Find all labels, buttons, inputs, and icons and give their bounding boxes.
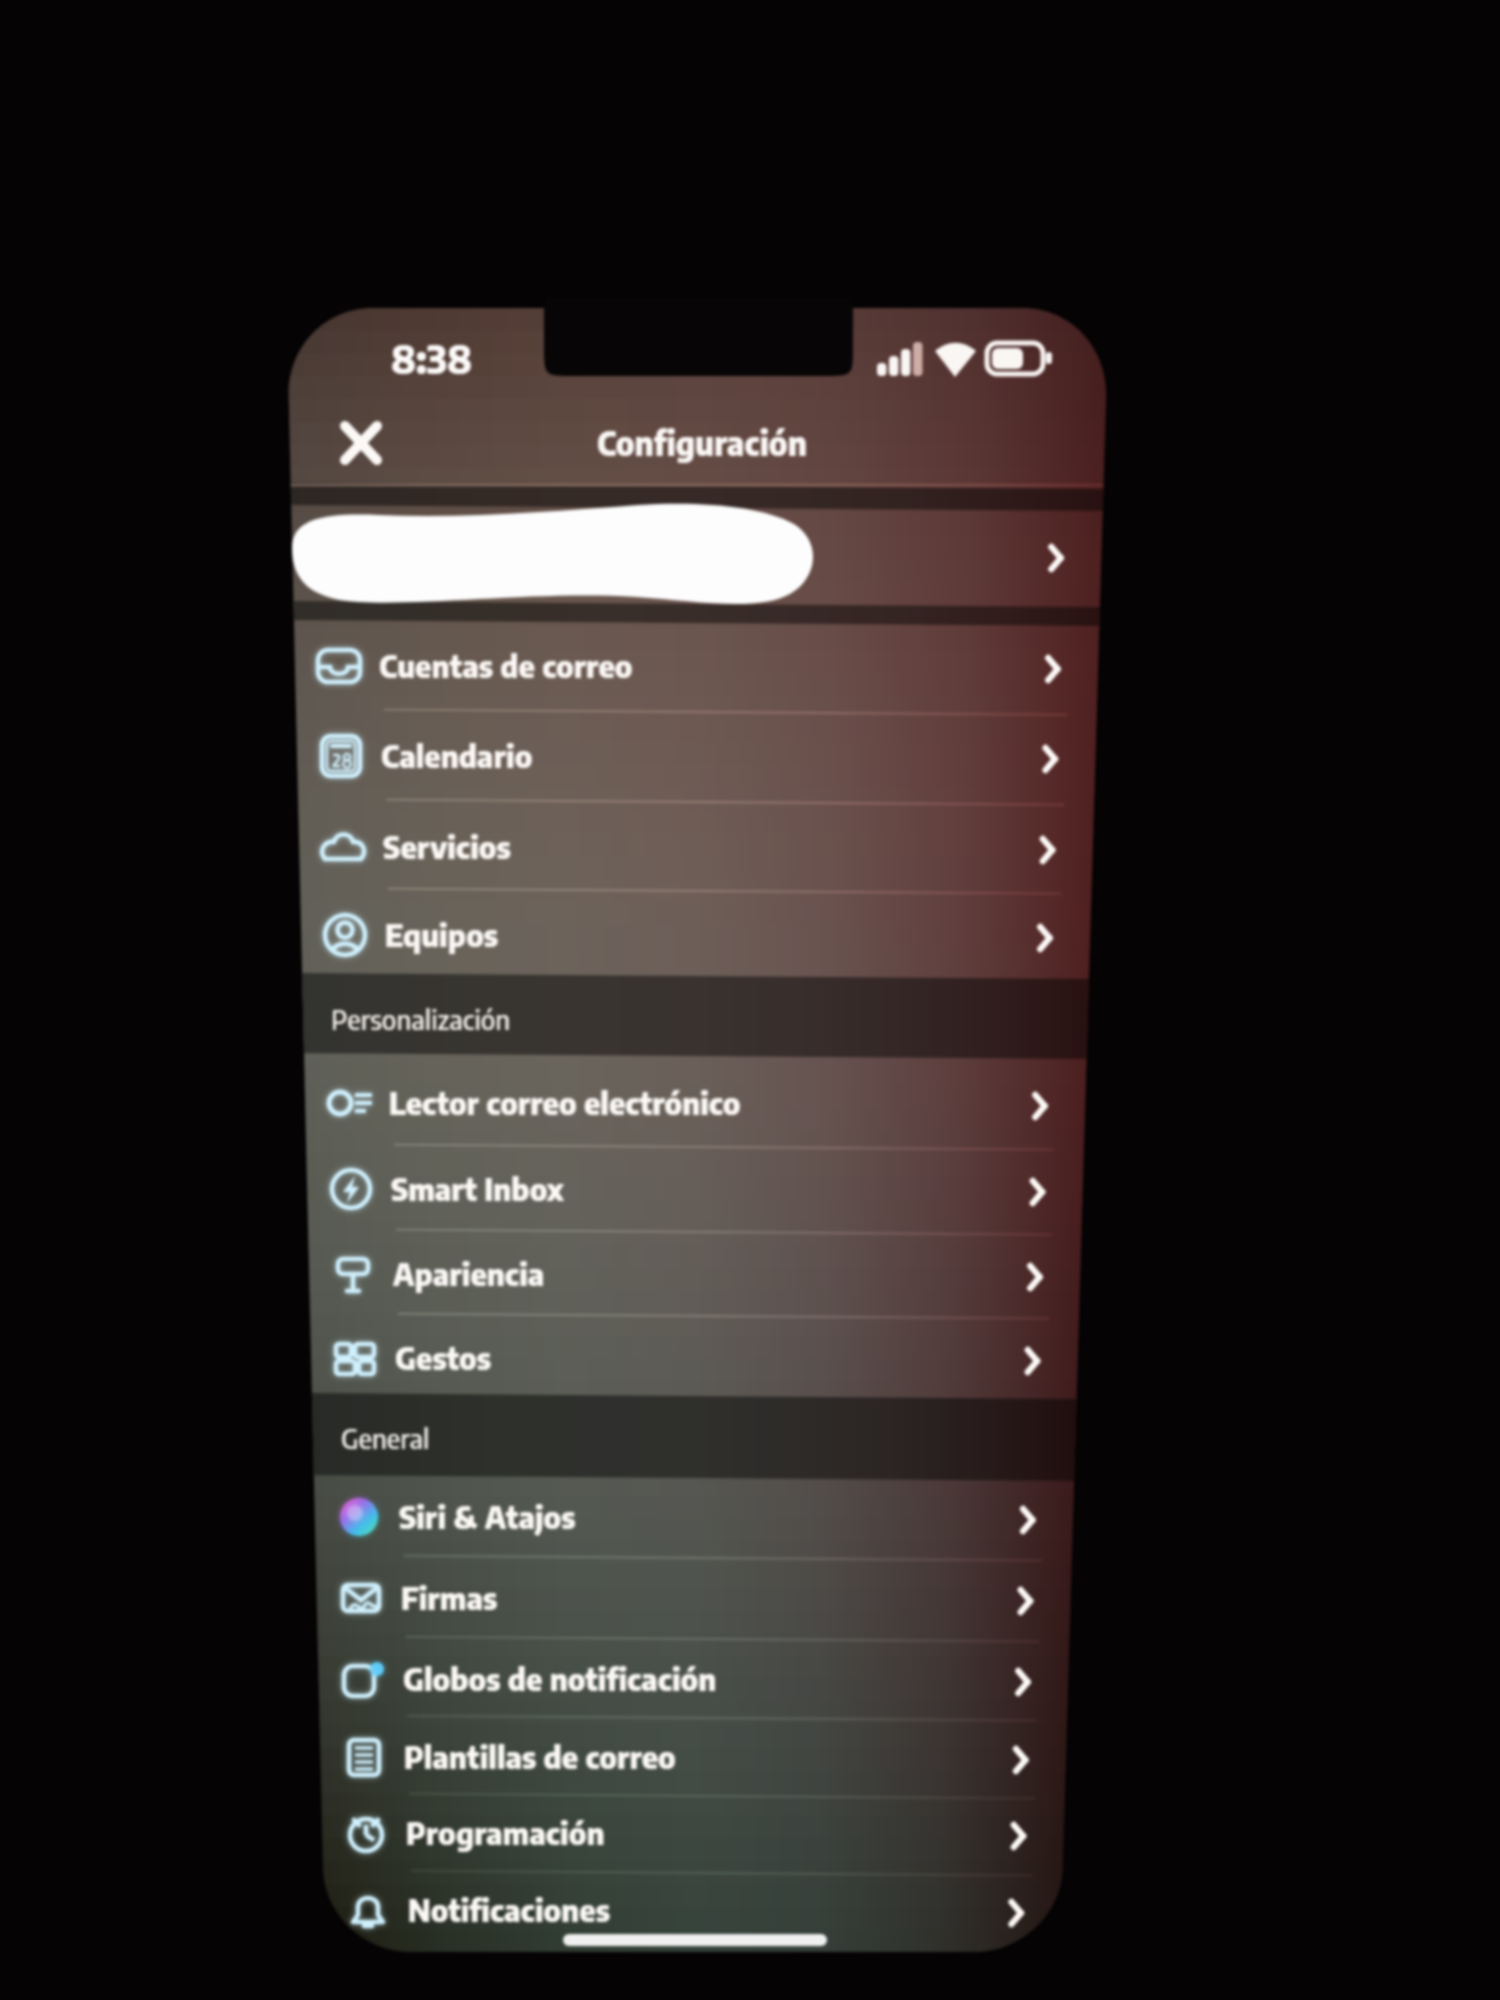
staticText: Firmas xyxy=(401,1578,498,1617)
button[interactable]: Globos de notificación xyxy=(319,1635,1069,1723)
staticText: 8:38 xyxy=(391,334,473,383)
staticText: Programación xyxy=(406,1813,605,1852)
button[interactable]: Calendario xyxy=(297,712,1096,800)
button[interactable]: Programación xyxy=(322,1789,1064,1877)
staticText: Lector correo electrónico xyxy=(389,1083,741,1122)
button[interactable]: Plantillas de correo xyxy=(320,1713,1066,1801)
staticText: Equipos xyxy=(385,915,499,954)
button[interactable]: Smart Inbox xyxy=(307,1145,1083,1233)
staticText: Gestos xyxy=(395,1338,491,1377)
staticText: Personalización xyxy=(331,1002,511,1036)
staticText: Cuentas de correo xyxy=(379,646,633,685)
staticText: General xyxy=(341,1421,430,1455)
staticText: Calendario xyxy=(381,736,533,775)
staticText: Apariencia xyxy=(393,1254,545,1293)
button[interactable]: Cerrar xyxy=(330,412,392,474)
button[interactable]: Gestos xyxy=(311,1314,1078,1402)
staticText: Siri & Atajos xyxy=(399,1497,576,1536)
button[interactable]: Notificaciones xyxy=(324,1866,1062,1954)
staticText: Notificaciones xyxy=(408,1890,610,1929)
button[interactable]: Firmas xyxy=(317,1554,1071,1642)
button[interactable]: Servicios xyxy=(299,803,1093,891)
staticText: Plantillas de correo xyxy=(404,1737,676,1776)
staticText: Globos de notificación xyxy=(403,1659,717,1698)
staticText: Servicios xyxy=(383,827,511,866)
button[interactable]: Equipos xyxy=(301,891,1090,979)
button[interactable]: Siri & Atajos xyxy=(315,1473,1073,1561)
staticText: Smart Inbox xyxy=(391,1169,564,1208)
button[interactable]: Apariencia xyxy=(309,1230,1080,1318)
button[interactable]: Cuentas de correo xyxy=(295,622,1098,710)
button[interactable]: Lector correo electrónico xyxy=(305,1059,1085,1147)
staticText: Configuración xyxy=(597,422,807,463)
